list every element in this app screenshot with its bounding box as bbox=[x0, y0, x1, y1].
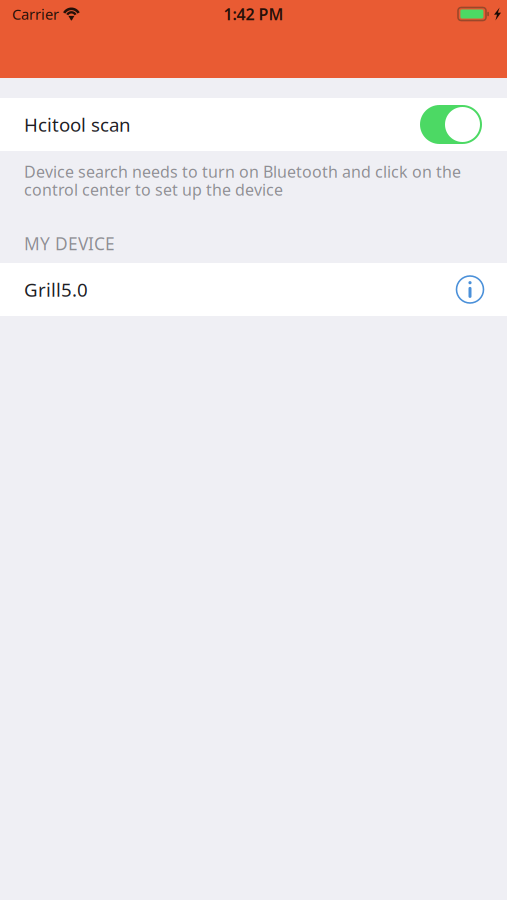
staticText: MY DEVICE bbox=[24, 232, 115, 255]
button[interactable]: Hcitool scan, on bbox=[420, 105, 482, 144]
staticText: Device search needs to turn on Bluetooth… bbox=[24, 161, 461, 182]
staticText: control center to set up the device bbox=[24, 179, 283, 200]
button[interactable]: Grill5.0 bbox=[0, 263, 507, 316]
staticText: 1:42 PM bbox=[223, 3, 283, 25]
staticText: Grill5.0 bbox=[24, 277, 88, 302]
button[interactable]: Hcitool scan bbox=[0, 98, 507, 151]
staticText: Carrier bbox=[12, 4, 59, 24]
staticText: Hcitool scan bbox=[24, 112, 131, 137]
button[interactable]: More Info bbox=[456, 275, 484, 303]
